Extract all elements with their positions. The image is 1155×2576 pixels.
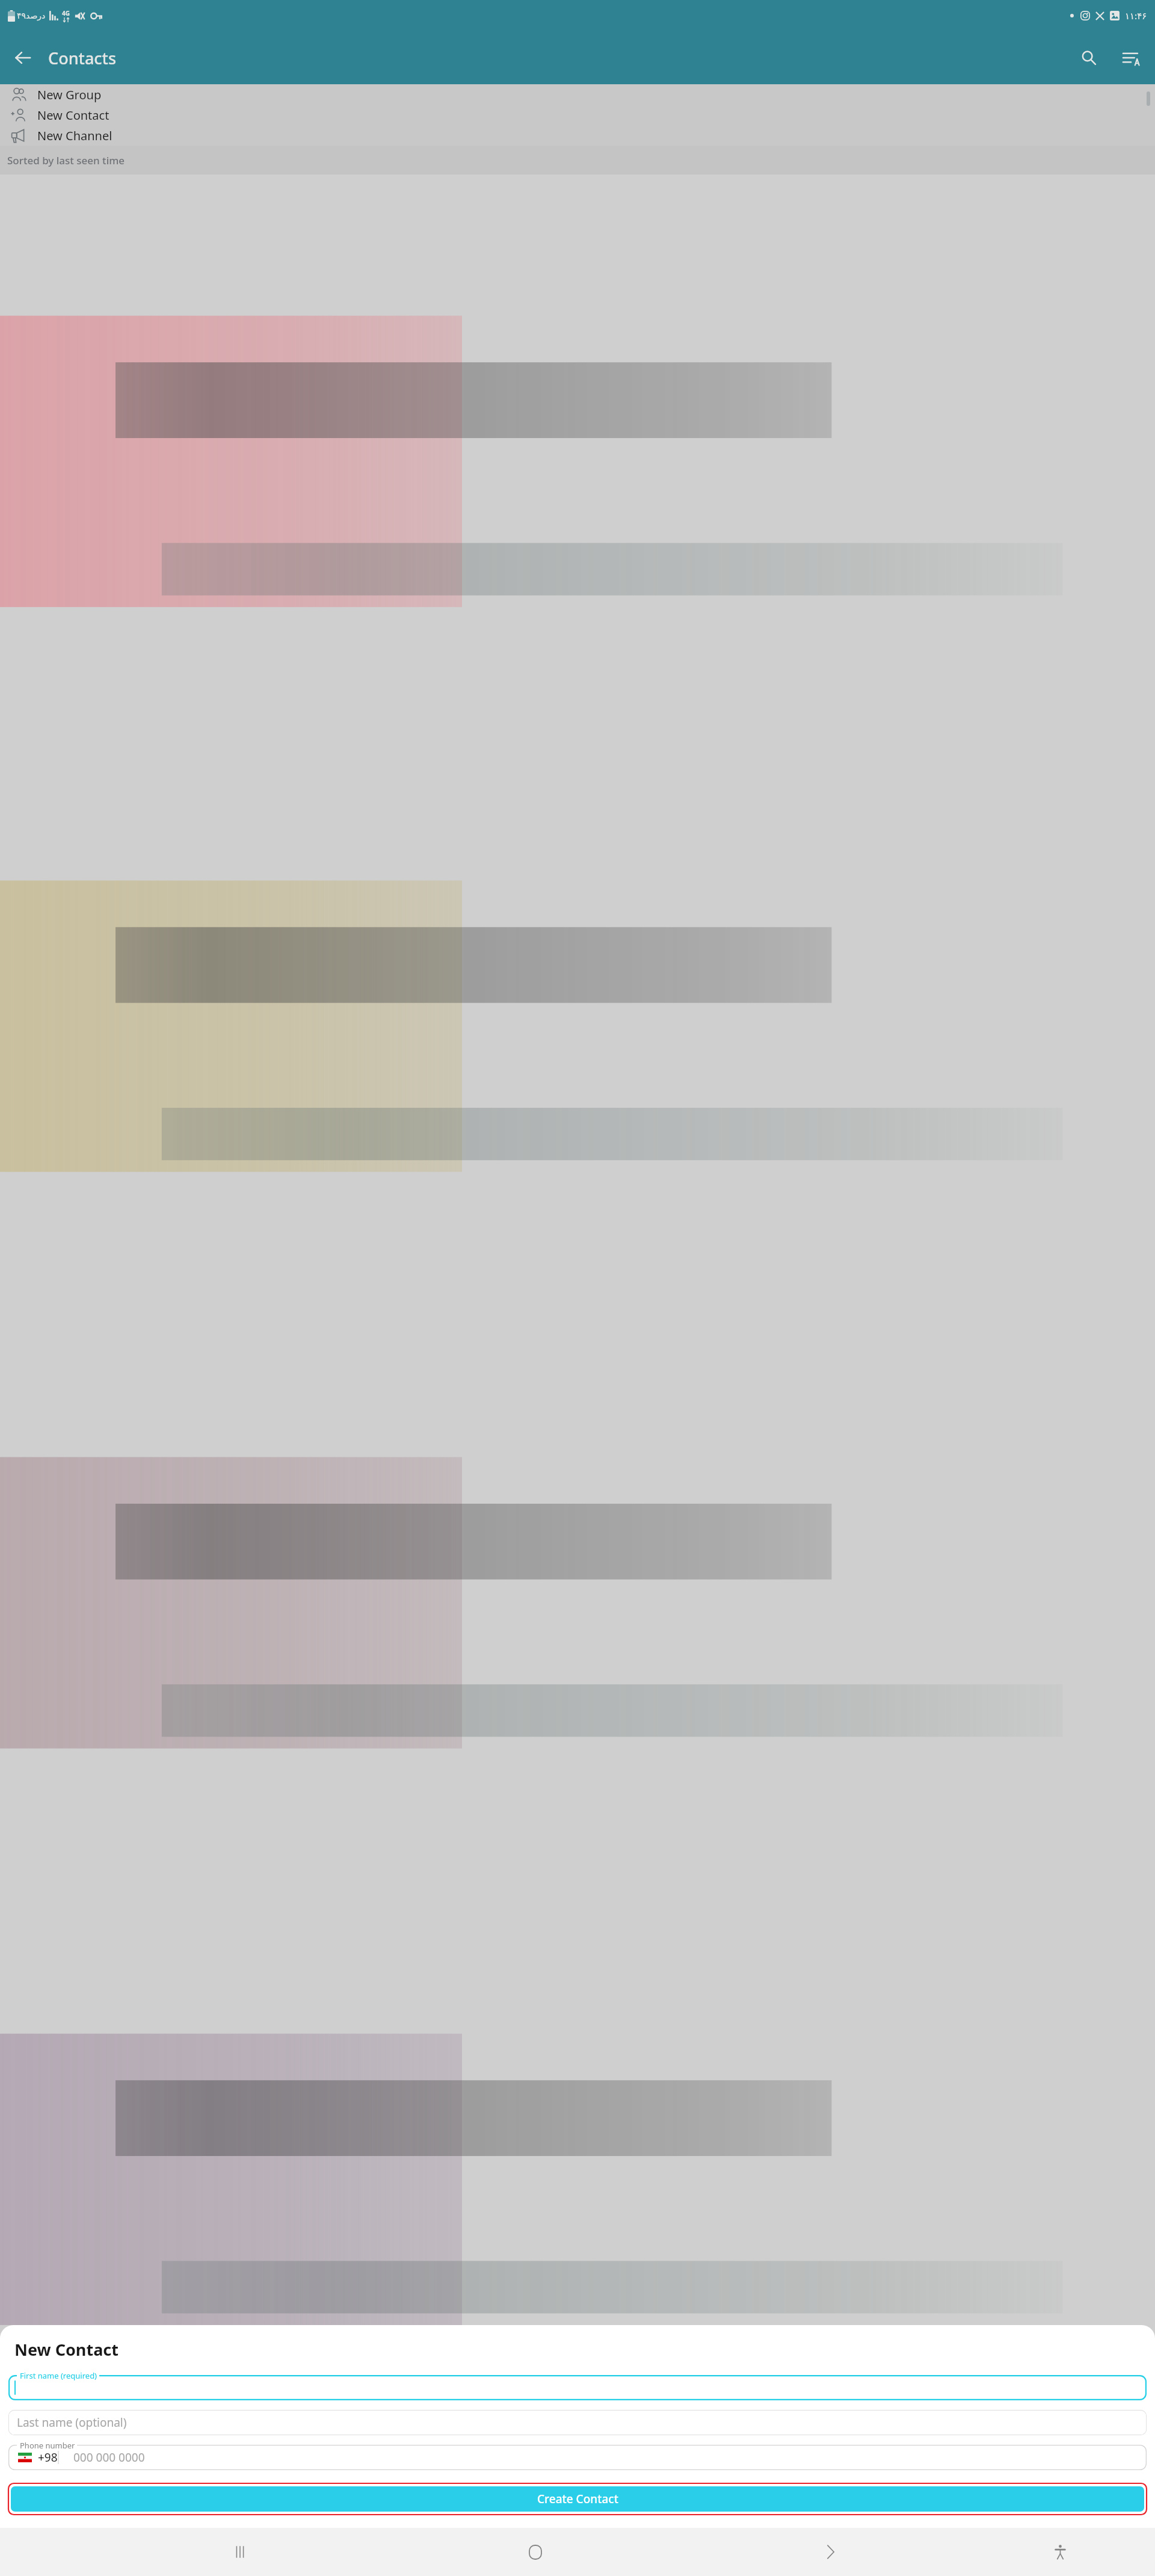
button[interactable]: Last name (optional) (8, 2410, 1147, 2435)
staticText: First name (required) (20, 2370, 97, 2381)
button[interactable]: Recent apps (224, 2536, 256, 2568)
button[interactable]: New Channel (0, 125, 1155, 146)
staticText: 000 000 0000 (73, 2450, 145, 2465)
staticText: New Contact (14, 2338, 119, 2361)
staticText: Contacts (48, 47, 117, 69)
staticText: +98 (38, 2450, 58, 2465)
button[interactable]: Accessibility (1044, 2536, 1076, 2568)
staticText: Create Contact (537, 2491, 618, 2507)
staticText: ۱۱:۴۶ (1125, 10, 1147, 22)
button[interactable]: Search (1073, 42, 1104, 73)
button[interactable]: Home (520, 2536, 551, 2568)
button[interactable]: Phone number (8, 2445, 1147, 2470)
staticText: New Channel (37, 128, 112, 144)
staticText: Phone number (20, 2440, 75, 2451)
button[interactable]: Back (7, 42, 38, 73)
staticText: 4G (62, 9, 70, 17)
button[interactable]: First name (required) (8, 2375, 1147, 2400)
button[interactable]: Sort (1115, 42, 1147, 73)
staticText: Last name (optional) (17, 2415, 127, 2430)
staticText: New Group (37, 87, 102, 103)
staticText: New Contact (37, 107, 109, 123)
button[interactable]: New Group (0, 84, 1155, 105)
staticText: ۴۹درصد (17, 11, 46, 20)
button[interactable]: Back (815, 2536, 846, 2568)
staticText: Sorted by last seen time (7, 153, 125, 167)
button[interactable]: Create Contact (11, 2486, 1144, 2512)
button[interactable]: New Contact (0, 105, 1155, 125)
